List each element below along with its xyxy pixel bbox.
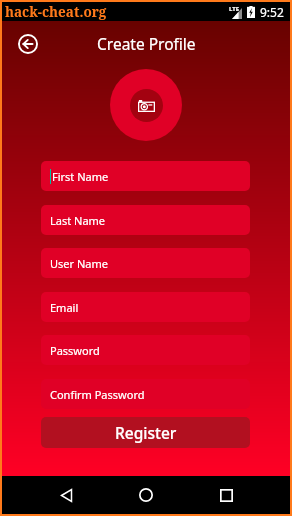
button[interactable]: Password (41, 335, 250, 365)
staticText: First Name (52, 169, 109, 184)
staticText: Register (115, 422, 177, 443)
staticText: 9:52 (260, 4, 284, 20)
button[interactable]: Confirm Password (41, 379, 250, 409)
button[interactable]: Add profile photo (110, 69, 182, 141)
staticText: Password (50, 343, 100, 358)
button[interactable]: User Name (41, 248, 250, 278)
button[interactable]: First Name (41, 161, 250, 191)
button[interactable]: Last Name (41, 205, 250, 235)
button[interactable]: Register (41, 417, 250, 448)
staticText: User Name (50, 256, 108, 271)
button[interactable]: Email (41, 292, 250, 322)
staticText: Last Name (50, 213, 106, 228)
button[interactable]: Recent apps (206, 476, 246, 514)
staticText: hack-cheat.org (5, 3, 107, 21)
staticText: Email (50, 300, 79, 315)
staticText: LTE (229, 5, 240, 13)
button[interactable]: Home (126, 476, 166, 514)
button[interactable]: Back (13, 29, 43, 59)
staticText: Confirm Password (50, 387, 145, 402)
staticText: Create Profile (97, 33, 196, 54)
button[interactable]: Back (46, 476, 86, 514)
